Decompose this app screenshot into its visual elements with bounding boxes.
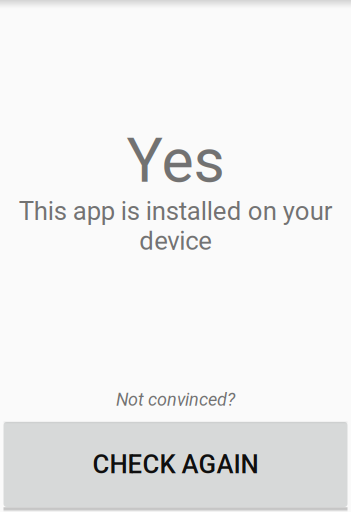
staticText: This app is installed on your device: [18, 196, 332, 256]
button[interactable]: CHECK AGAIN: [3, 422, 347, 507]
staticText: Yes: [126, 125, 224, 197]
staticText: CHECK AGAIN: [92, 449, 258, 480]
staticText: Not convinced?: [116, 389, 235, 410]
